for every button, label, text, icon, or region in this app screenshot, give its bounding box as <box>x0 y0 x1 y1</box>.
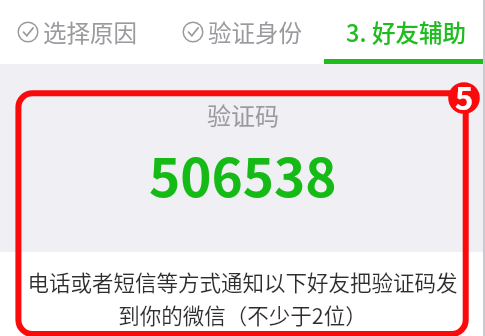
staticText: 5 <box>455 74 474 119</box>
button[interactable]: 3. <box>346 0 467 64</box>
staticText: 好友辅助 <box>372 15 466 49</box>
staticText: 选择原因 <box>43 15 137 49</box>
staticText: 506538 <box>149 136 337 213</box>
button[interactable]: 选择原因 <box>17 0 137 64</box>
button[interactable]: 验证身份 <box>182 0 303 64</box>
staticText: 3. <box>346 15 367 49</box>
staticText: 电话或者短信等方式通知以下好友把验证码发到你的微信（不少于2位） <box>18 266 467 331</box>
staticText: 验证身份 <box>208 15 302 49</box>
other: Step 5 marker <box>438 72 485 124</box>
staticText: 验证码 <box>207 97 279 132</box>
